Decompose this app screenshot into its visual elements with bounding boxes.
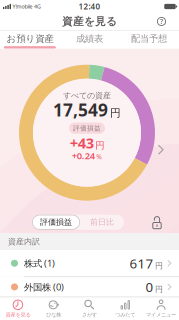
staticText: 成績表 (76, 33, 103, 44)
button[interactable]: 外国株 (0) (0, 277, 179, 297)
button[interactable]: 前日比 (82, 215, 122, 230)
staticText: 資産内訳 (8, 237, 40, 246)
button[interactable]: 配当予想 (119, 31, 179, 49)
staticText: 円 (95, 140, 104, 151)
staticText: 株式 (1) (24, 257, 55, 269)
button[interactable]: 評価損益 (32, 215, 80, 230)
button[interactable]: お預り資産 (0, 31, 60, 49)
staticText: 資産を見る (62, 15, 117, 28)
staticText: % (96, 152, 102, 161)
button[interactable]: ヘルプ (155, 15, 168, 28)
staticText: 617 (129, 254, 153, 272)
staticText: マイメニュー (146, 311, 176, 318)
staticText: お預り資産 (6, 33, 53, 44)
staticText: 配当予想 (131, 33, 167, 44)
staticText: ? (160, 17, 163, 26)
staticText: +0.24 (72, 149, 95, 162)
staticText: さがす (82, 311, 97, 318)
button[interactable]: ひな株 (36, 298, 72, 320)
staticText: 円 (155, 284, 163, 294)
staticText: 外国株 (0) (24, 281, 64, 293)
staticText: +43 (70, 133, 94, 152)
staticText: つみたて (115, 311, 135, 318)
button[interactable]: さがす (72, 298, 107, 320)
staticText: 円 (155, 261, 163, 271)
button[interactable]: ロック (150, 214, 164, 229)
staticText: 12:40 (78, 1, 100, 12)
button[interactable]: 株式 (1) (0, 250, 179, 276)
button[interactable]: マイメニュー (143, 298, 179, 320)
staticText: 評価損益 (73, 124, 101, 132)
staticText: すべての資産 (63, 91, 111, 101)
staticText: 評価損益 (40, 217, 72, 227)
staticText: 4G (34, 3, 41, 10)
button[interactable]: 成績表 (60, 31, 119, 49)
staticText: 0 (145, 278, 153, 296)
staticText: 資産を見る (5, 311, 30, 318)
staticText: ひな株 (46, 311, 61, 318)
button[interactable]: 次へ (157, 144, 165, 156)
staticText: 17,549 (53, 98, 108, 121)
staticText: Y!mobile (12, 3, 32, 10)
staticText: 前日比 (90, 217, 114, 227)
staticText: 円 (110, 106, 121, 119)
button[interactable]: つみたて (107, 298, 143, 320)
button[interactable]: 資産を見る (0, 298, 36, 320)
